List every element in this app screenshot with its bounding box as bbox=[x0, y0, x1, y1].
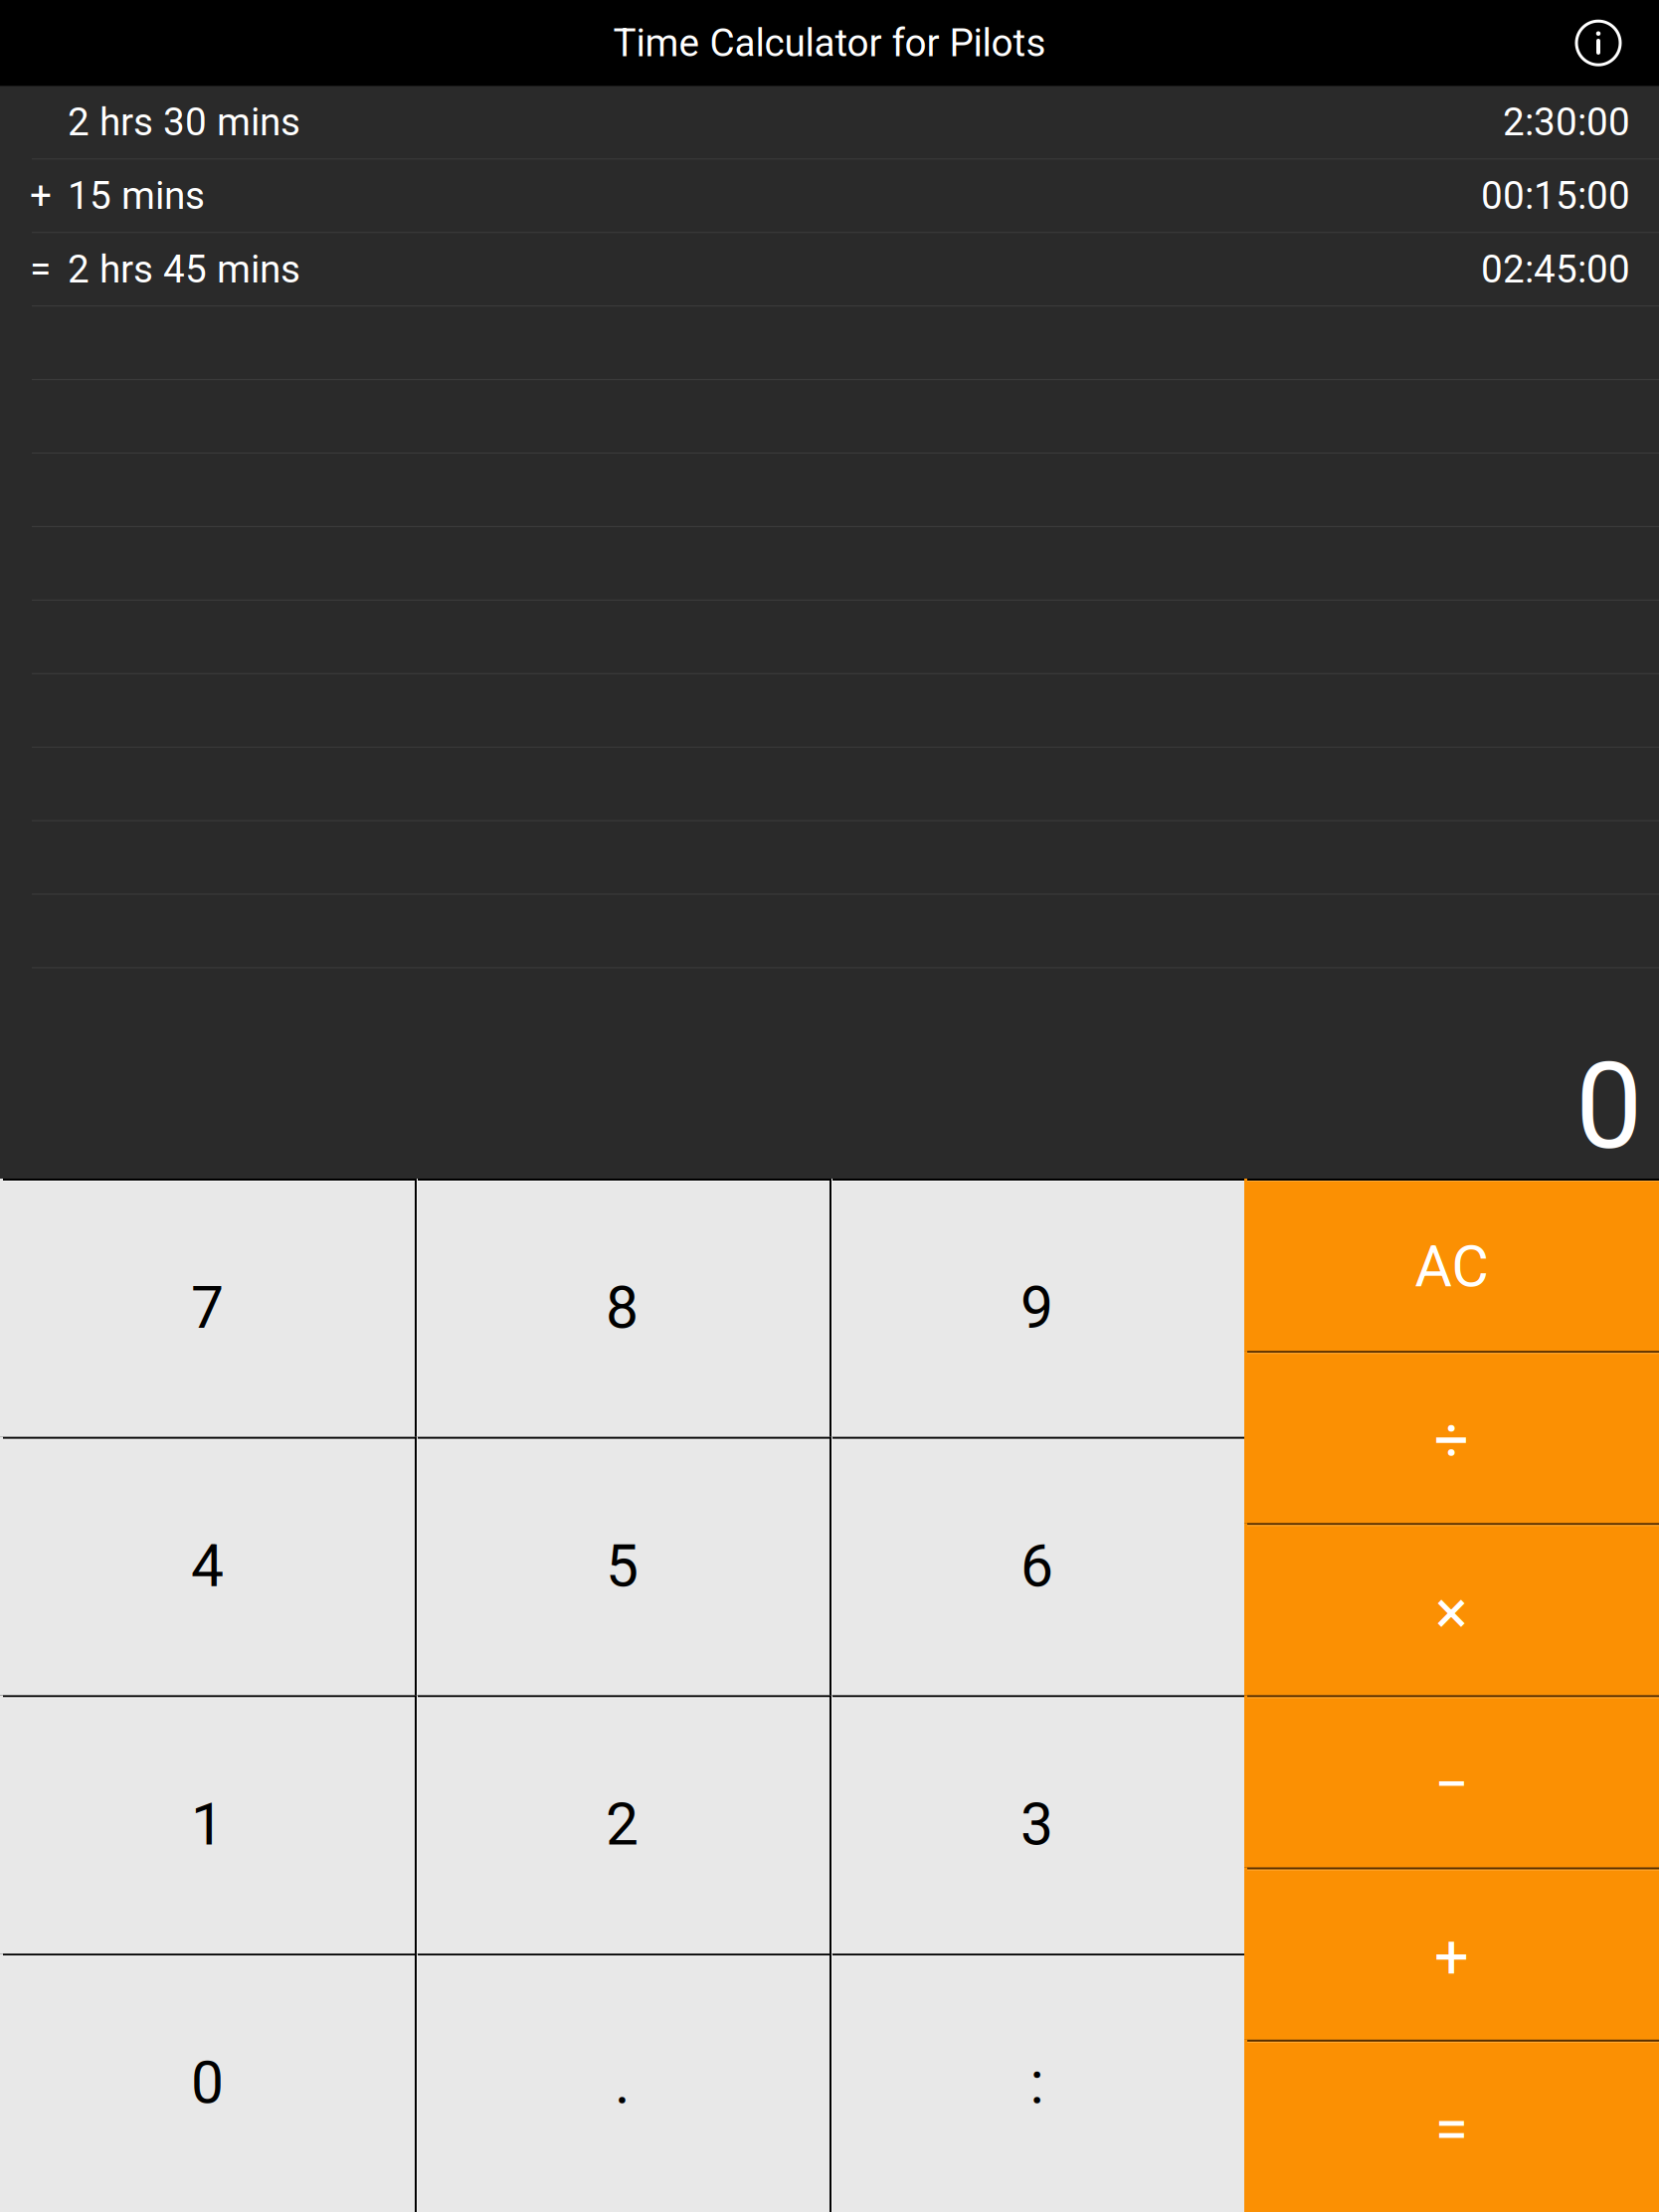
staticText: ÷ bbox=[1434, 1404, 1469, 1476]
staticText: 7 bbox=[191, 1274, 224, 1342]
button[interactable]: 1 bbox=[0, 1695, 415, 1954]
staticText: + bbox=[30, 173, 52, 218]
staticText: 6 bbox=[1020, 1532, 1053, 1600]
staticText: 2 hrs 45 mins bbox=[68, 247, 300, 292]
staticText: 15 mins bbox=[68, 173, 205, 218]
staticText: 2 hrs 30 mins bbox=[68, 100, 300, 145]
staticText: 4 bbox=[191, 1532, 224, 1600]
button[interactable]: Equals bbox=[1244, 2040, 1659, 2212]
staticText: = bbox=[1435, 2093, 1469, 2165]
button[interactable]: 7 bbox=[0, 1179, 415, 1437]
button[interactable]: Colon bbox=[829, 1954, 1244, 2212]
staticText: − bbox=[1434, 1749, 1469, 1820]
staticText: 02:45:00 bbox=[1481, 247, 1630, 292]
staticText: 3 bbox=[1020, 1790, 1053, 1859]
staticText: 2:30:00 bbox=[1503, 100, 1630, 145]
button[interactable]: 0 bbox=[0, 1954, 415, 2212]
staticText: 2 bbox=[606, 1790, 639, 1859]
button[interactable]: 8 bbox=[415, 1179, 829, 1437]
button[interactable]: 2 bbox=[415, 1695, 829, 1954]
button[interactable]: Multiply bbox=[1244, 1523, 1659, 1695]
staticText: Time Calculator for Pilots bbox=[613, 20, 1046, 65]
staticText: . bbox=[615, 2049, 630, 2117]
button[interactable]: Divide bbox=[1244, 1351, 1659, 1523]
staticText: 8 bbox=[606, 1274, 639, 1342]
button[interactable]: Subtract bbox=[1244, 1695, 1659, 1868]
button[interactable]: Decimal point bbox=[415, 1954, 829, 2212]
button[interactable]: All clear bbox=[1244, 1179, 1659, 1351]
button[interactable]: 4 bbox=[0, 1437, 415, 1695]
staticText: 0 bbox=[191, 2049, 224, 2117]
staticText: 00:15:00 bbox=[1481, 173, 1630, 218]
staticText: = bbox=[30, 247, 51, 292]
staticText: AC bbox=[1415, 1233, 1488, 1300]
button[interactable]: 3 bbox=[829, 1695, 1244, 1954]
staticText: : bbox=[1030, 2049, 1044, 2117]
staticText: 9 bbox=[1020, 1274, 1053, 1342]
button[interactable]: Add bbox=[1244, 1868, 1659, 2040]
button[interactable]: 5 bbox=[415, 1437, 829, 1695]
button[interactable]: Info bbox=[1555, 0, 1642, 87]
button[interactable]: 6 bbox=[829, 1437, 1244, 1695]
staticText: 5 bbox=[606, 1532, 639, 1600]
staticText: + bbox=[1434, 1921, 1469, 1992]
staticText: × bbox=[1435, 1576, 1468, 1648]
button[interactable]: 9 bbox=[829, 1179, 1244, 1437]
staticText: 0 bbox=[1575, 1037, 1642, 1177]
staticText: 1 bbox=[191, 1790, 224, 1859]
